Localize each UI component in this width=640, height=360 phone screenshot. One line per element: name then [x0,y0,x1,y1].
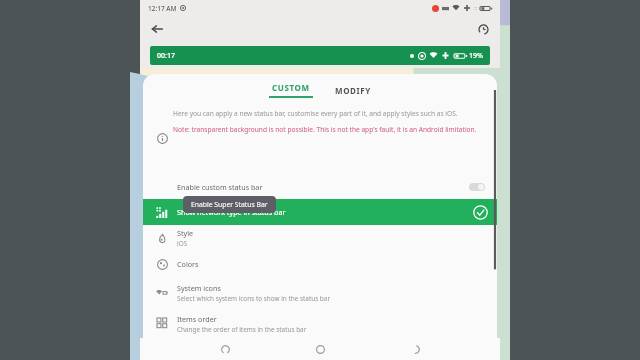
button[interactable]: Home [310,339,330,359]
button[interactable]: Recents [215,339,235,359]
button[interactable]: History [473,19,493,39]
button[interactable]: Enable Super Status Bar [183,196,276,213]
button[interactable]: MODIFY [329,83,377,98]
staticText: Here you can apply a new status bar, cus… [173,109,458,118]
staticText: Change the order of items in the status … [177,325,307,334]
staticText: Select which system icons to show in the… [177,294,331,303]
button[interactable]: Enable custom status bar [143,175,497,199]
staticText: 00:17 [157,51,175,61]
staticText: Show network type in status bar [177,207,286,217]
button[interactable]: Back [147,19,167,39]
button[interactable]: System icons [143,277,497,309]
button[interactable]: Items order [143,309,497,338]
staticText: Note: transparent background is not poss… [173,125,477,134]
staticText: Items order [177,314,217,324]
button[interactable]: Style [143,225,497,251]
button[interactable]: Show network type in status bar [143,199,497,225]
staticText: System icons [177,283,221,293]
staticText: 19% [469,51,483,61]
staticText: Enable Super Status Bar [191,200,268,209]
button[interactable]: Back [405,339,425,359]
button[interactable]: Colors [143,251,497,277]
staticText: Colors [177,259,199,269]
staticText: 12:17 AM [148,4,177,13]
staticText: MODIFY [335,85,371,96]
staticText: :: [474,4,478,12]
staticText: Style [177,228,194,238]
button[interactable]: 00:17 [150,46,490,65]
staticText: Enable custom status bar [177,182,263,192]
staticText: iOS [177,239,188,248]
staticText: CUSTOM [272,82,310,93]
button[interactable]: CUSTOM [263,82,319,98]
